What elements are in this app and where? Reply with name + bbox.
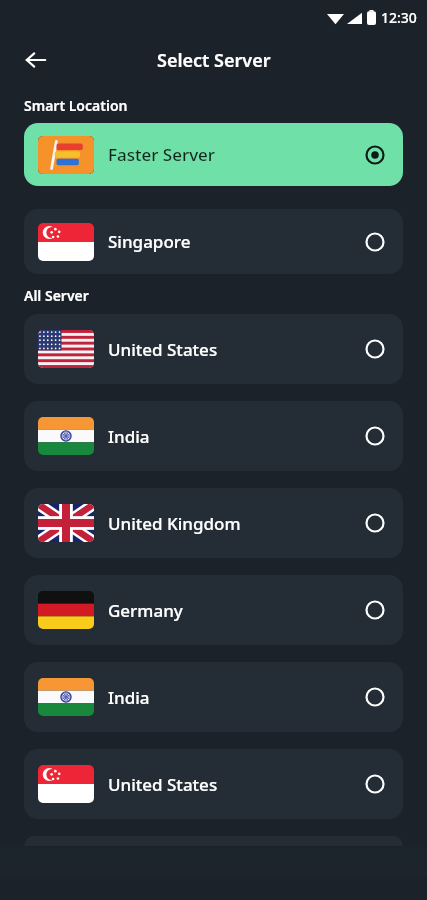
staticText: United States [108, 338, 365, 361]
button[interactable]: Back [14, 38, 58, 82]
button[interactable]: Faster Server [24, 123, 403, 186]
button[interactable]: United States [24, 749, 403, 819]
staticText: India [108, 686, 365, 709]
button[interactable]: United States [24, 314, 403, 384]
staticText: Select Server [157, 48, 271, 73]
staticText: All Server [24, 286, 89, 305]
staticText: United States [108, 773, 365, 796]
button[interactable]: United Kingdom [24, 488, 403, 558]
staticText: Germany [108, 599, 365, 622]
button[interactable]: India [24, 662, 403, 732]
button[interactable]: India [24, 401, 403, 471]
staticText: Smart Location [24, 96, 128, 115]
staticText: Singapore [108, 230, 365, 253]
staticText: United Kingdom [108, 512, 365, 535]
staticText: 12:30 [381, 8, 417, 27]
button[interactable]: Germany [24, 575, 403, 645]
staticText: India [108, 425, 365, 448]
staticText: Faster Server [108, 143, 365, 166]
button[interactable]: Singapore [24, 209, 403, 274]
